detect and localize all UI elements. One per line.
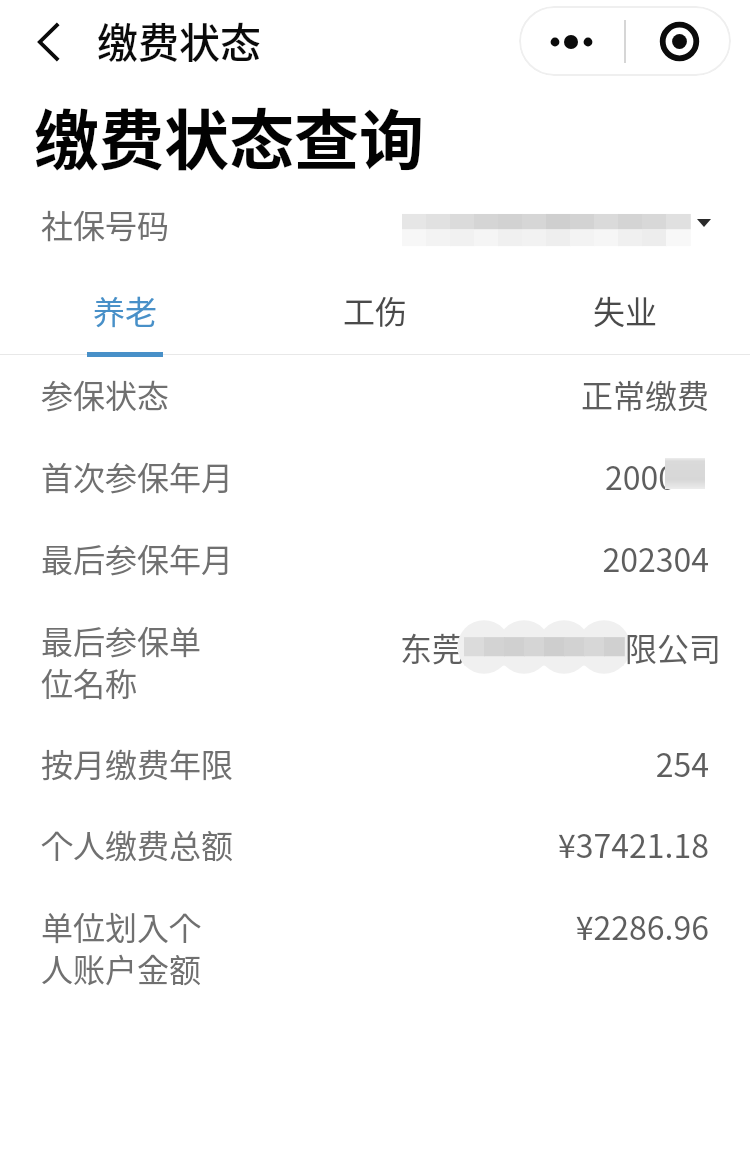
staticText: ¥2286.96 <box>575 903 709 949</box>
staticText: 养老 <box>93 287 158 333</box>
staticText: 202304 <box>602 535 709 581</box>
button[interactable]: Back <box>24 17 74 67</box>
button[interactable]: 参保状态 <box>0 371 750 453</box>
staticText: 缴费状态查询 <box>34 89 425 183</box>
button[interactable]: 工伤 <box>250 278 500 357</box>
button[interactable]: 单位划入个 人账户金额 <box>0 903 750 1027</box>
button[interactable]: 社保号码 <box>0 193 750 265</box>
staticText: 失业 <box>593 287 658 333</box>
staticText: 缴费状态 <box>97 10 261 69</box>
button[interactable]: 首次参保年月 <box>0 453 750 535</box>
staticText: 工伤 <box>343 287 408 333</box>
staticText: 个人缴费总额 <box>41 821 234 867</box>
staticText: 社保号码 <box>41 201 170 247</box>
staticText: 限公司 <box>624 624 721 670</box>
button[interactable]: 养老 <box>0 278 250 357</box>
staticText: 首次参保年月 <box>41 453 234 499</box>
staticText: 按月缴费年限 <box>41 740 234 786</box>
staticText: 2000 <box>604 453 676 499</box>
staticText: 参保状态 <box>41 371 170 417</box>
staticText: 单位划入个 人账户金额 <box>41 903 202 991</box>
staticText: 最后参保年月 <box>41 535 234 581</box>
staticText: 254 <box>655 740 709 786</box>
staticText: 正常缴费 <box>580 371 709 417</box>
button[interactable]: 失业 <box>500 278 750 357</box>
staticText: ¥37421.18 <box>558 821 709 867</box>
button[interactable]: 按月缴费年限 <box>0 740 750 821</box>
button[interactable]: More options <box>519 6 731 76</box>
button[interactable]: 最后参保年月 <box>0 535 750 617</box>
button[interactable]: 个人缴费总额 <box>0 821 750 903</box>
staticText: 东莞 <box>399 624 464 670</box>
staticText: 最后参保单 位名称 <box>41 617 202 705</box>
button[interactable]: 最后参保单 位名称 <box>0 617 750 740</box>
